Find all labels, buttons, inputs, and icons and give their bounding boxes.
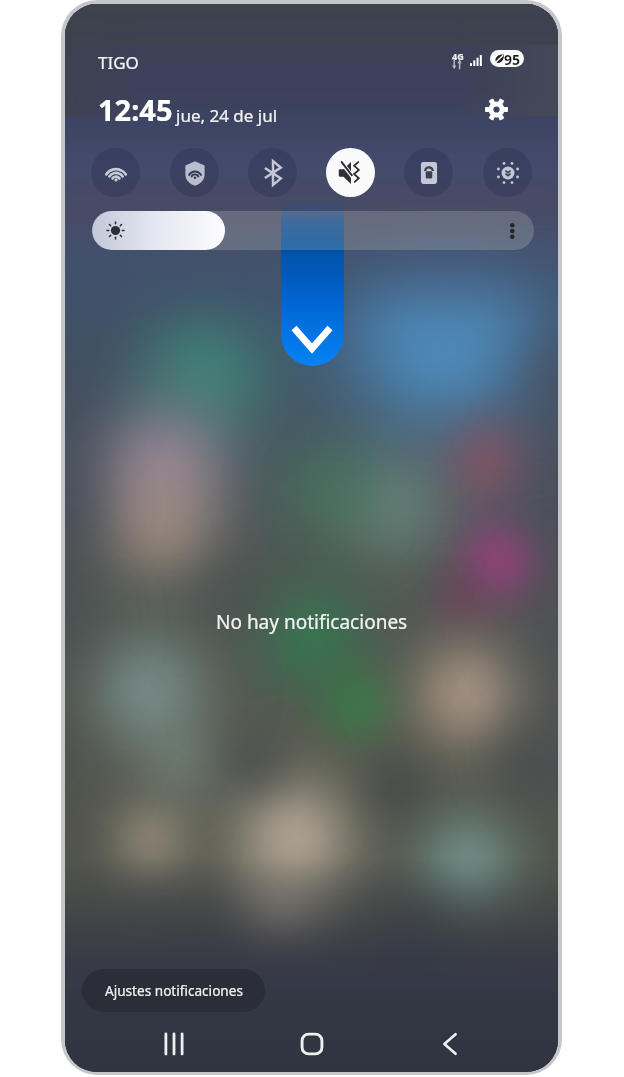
button[interactable]: Wi-Fi [91, 148, 140, 197]
button[interactable]: Eye comfort shield [483, 148, 532, 197]
staticText: jue, 24 de jul [176, 104, 278, 127]
button[interactable]: Recents [148, 1018, 200, 1070]
staticText: TIGO [98, 51, 139, 74]
button[interactable]: Secure Wi-Fi [170, 148, 219, 197]
button[interactable]: Ajustes notificaciones [82, 969, 265, 1012]
staticText: 4G [452, 50, 464, 62]
button[interactable]: Bluetooth [248, 148, 297, 197]
staticText: Ajustes notificaciones [105, 981, 243, 1000]
staticText: 12:45 [98, 90, 173, 129]
button[interactable]: Settings [476, 89, 516, 129]
button[interactable]: Brightness [92, 211, 534, 250]
staticText: 95 [504, 50, 521, 67]
button[interactable]: Auto rotate [404, 148, 453, 197]
staticText: No hay notificaciones [216, 609, 408, 635]
button[interactable]: Home [286, 1018, 338, 1070]
button[interactable]: Back [424, 1018, 476, 1070]
button[interactable]: Sound mode [326, 148, 375, 197]
